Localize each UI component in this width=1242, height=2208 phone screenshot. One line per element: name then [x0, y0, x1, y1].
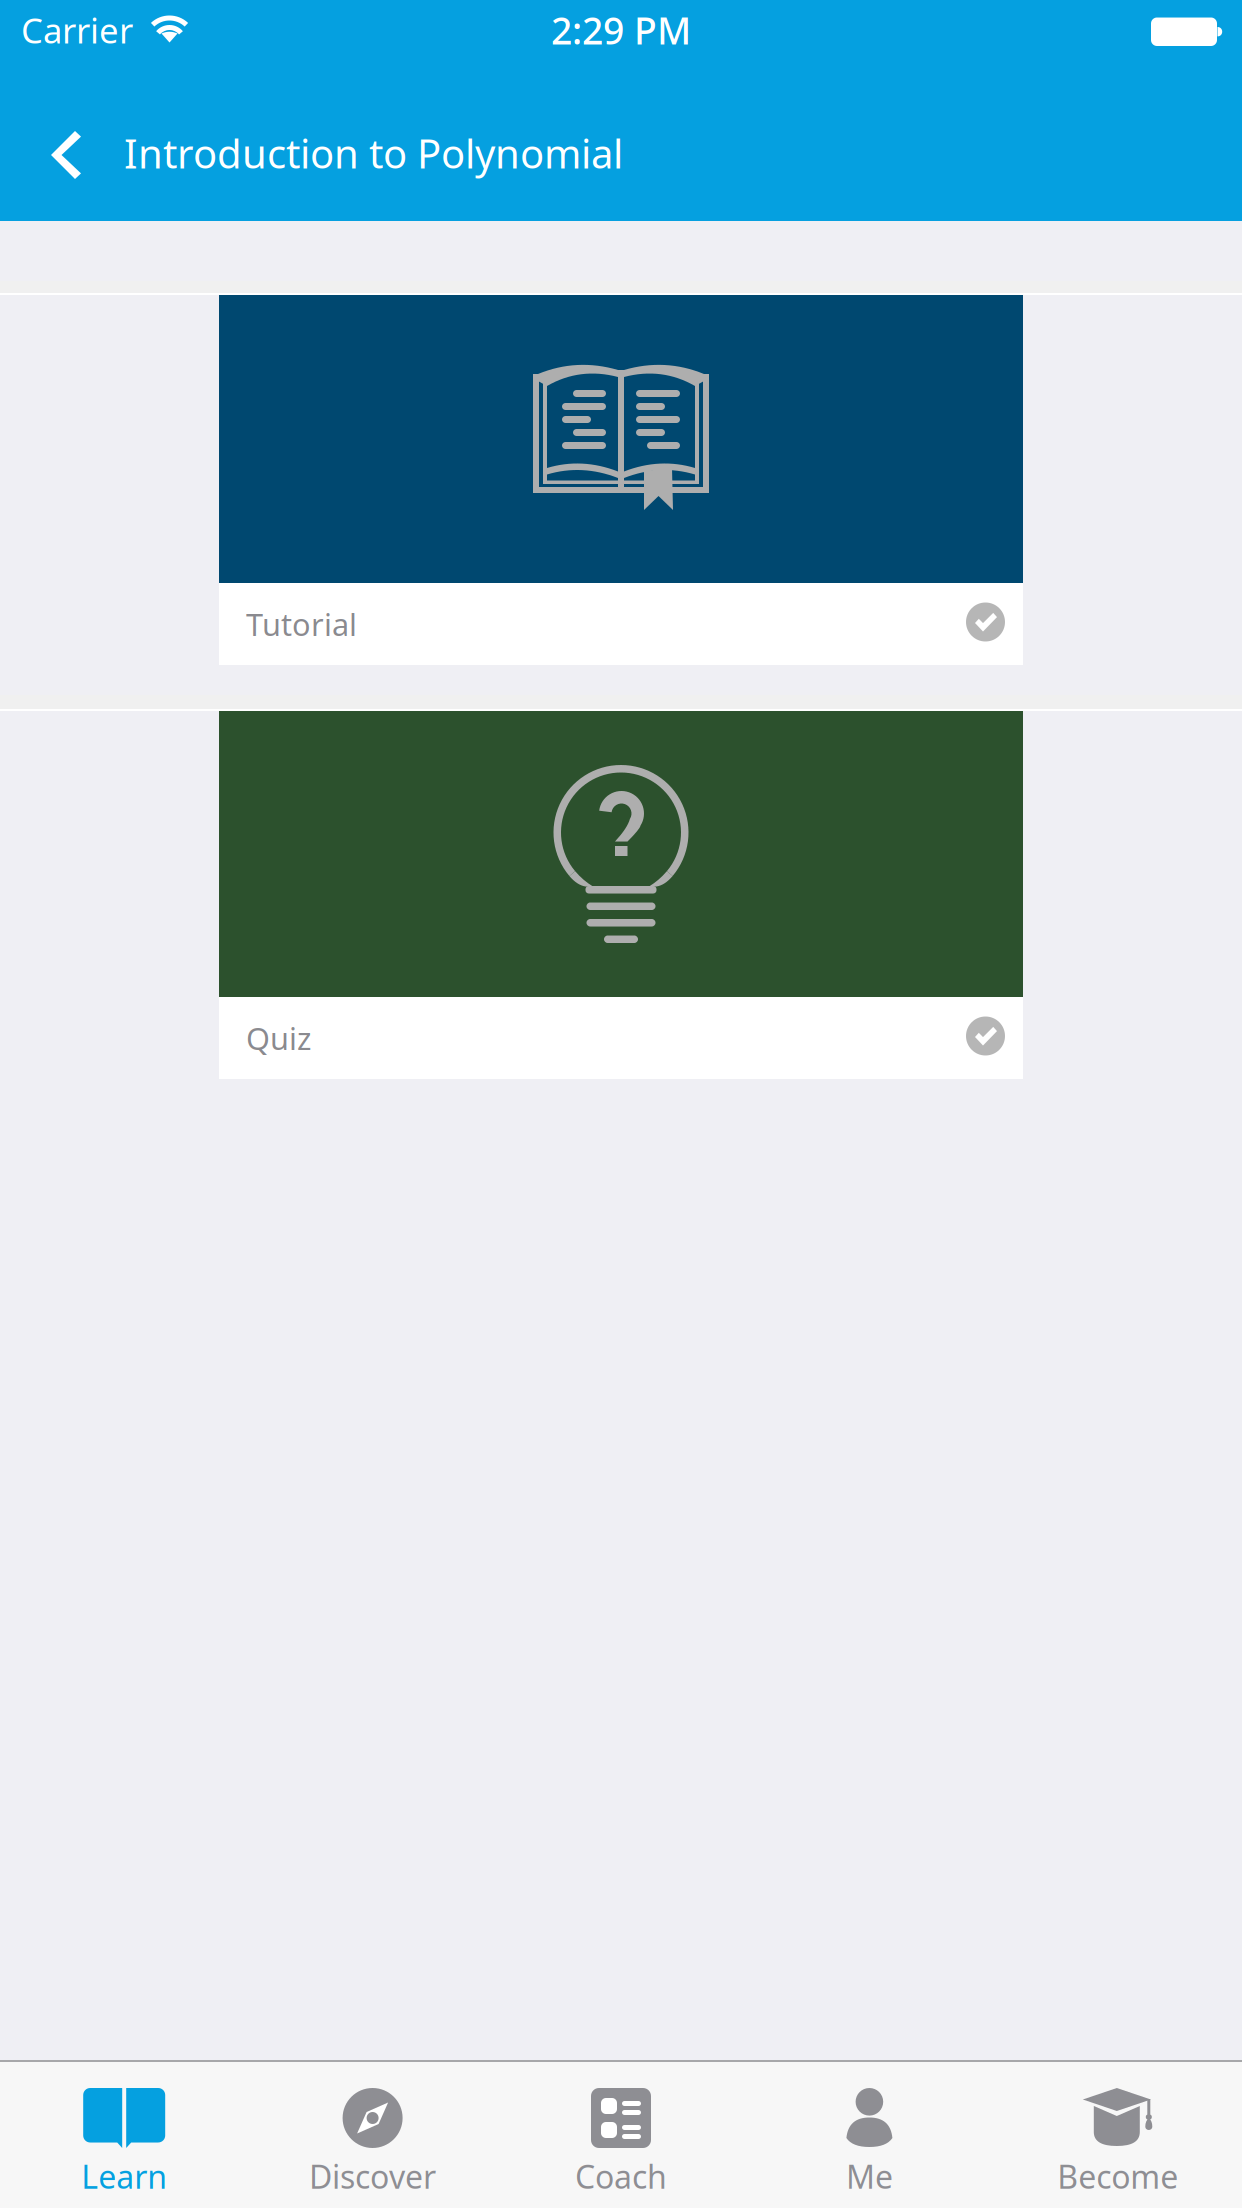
staticText: Discover	[309, 2155, 436, 2197]
button[interactable]: Me	[745, 2062, 994, 2208]
staticText: Tutorial	[246, 604, 357, 644]
button[interactable]: Learn	[0, 2062, 248, 2208]
button[interactable]: Discover	[248, 2062, 497, 2208]
staticText: Introduction to Polynomial	[124, 126, 623, 179]
button[interactable]: Coach	[497, 2062, 745, 2208]
staticText: 2:29 PM	[551, 5, 691, 55]
staticText: Become	[1057, 2155, 1178, 2197]
staticText: Carrier	[21, 7, 133, 53]
button[interactable]: Back	[0, 115, 124, 191]
staticText: Me	[846, 2155, 893, 2197]
staticText: Quiz	[246, 1018, 311, 1058]
staticText: Coach	[575, 2155, 667, 2197]
button[interactable]: Tutorial	[219, 295, 1023, 665]
button[interactable]: Quiz	[219, 711, 1023, 1079]
staticText: Learn	[81, 2155, 167, 2197]
button[interactable]: Become	[994, 2062, 1242, 2208]
